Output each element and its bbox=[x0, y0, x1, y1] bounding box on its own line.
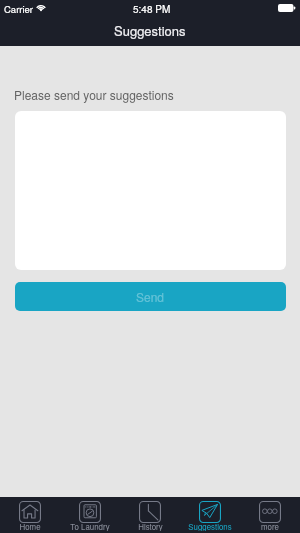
button[interactable]: Send bbox=[15, 282, 286, 311]
staticText: Carrier bbox=[4, 2, 34, 16]
staticText: Send bbox=[136, 288, 165, 305]
button[interactable]: Suggestions bbox=[180, 497, 240, 533]
staticText: Suggestions bbox=[188, 521, 232, 531]
staticText: Suggestions bbox=[114, 21, 186, 40]
button[interactable]: History bbox=[120, 497, 180, 533]
staticText: more bbox=[261, 521, 279, 531]
button[interactable]: more bbox=[240, 497, 300, 533]
button[interactable]: To Laundry bbox=[60, 497, 120, 533]
button[interactable]: Home bbox=[0, 497, 60, 533]
staticText: Please send your suggestions bbox=[14, 86, 174, 103]
staticText: History bbox=[138, 521, 163, 531]
staticText: 5:48 PM bbox=[133, 2, 171, 16]
staticText: Home bbox=[19, 521, 41, 531]
staticText: To Laundry bbox=[70, 521, 110, 531]
